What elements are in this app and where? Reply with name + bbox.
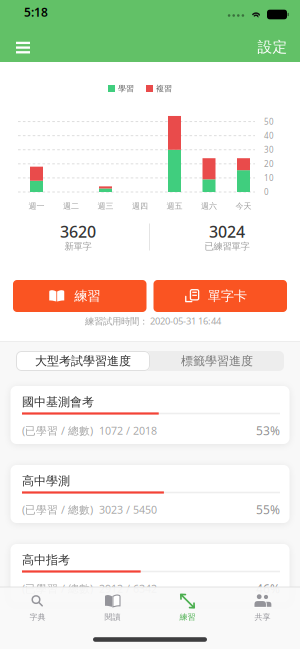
button[interactable]: 高中學測 xyxy=(10,465,289,523)
staticText: 週四 xyxy=(132,201,148,211)
staticText: 3024 xyxy=(209,221,245,242)
staticText: 閱讀 xyxy=(104,612,120,622)
staticText: 30 xyxy=(264,144,274,155)
staticText: 新單字 xyxy=(64,241,91,252)
staticText: 練習 xyxy=(74,288,100,304)
button[interactable]: 字典 xyxy=(2,588,72,628)
staticText: 20 xyxy=(264,158,274,169)
staticText: 單字卡 xyxy=(208,288,247,304)
button[interactable]: 高中指考 xyxy=(10,544,289,602)
button[interactable]: 設定 xyxy=(257,38,287,56)
button[interactable]: 共享 xyxy=(227,588,297,628)
staticText: 高中學測 xyxy=(22,474,70,488)
button[interactable]: 國中基測會考 xyxy=(10,386,289,444)
staticText: 字典 xyxy=(29,612,45,622)
staticText: 10 xyxy=(264,173,274,183)
staticText: 練習試用時間： 2020-05-31 16:44 xyxy=(85,315,221,327)
staticText: 46% xyxy=(256,580,280,596)
staticText: 週六 xyxy=(201,201,217,211)
staticText: 週三 xyxy=(97,201,113,211)
staticText: 設定 xyxy=(257,38,287,56)
staticText: 55% xyxy=(256,501,280,517)
staticText: 0 xyxy=(264,187,269,197)
staticText: (已學習 / 總數) 3023 / 5450 xyxy=(22,502,157,517)
staticText: 國中基測會考 xyxy=(22,395,94,409)
button[interactable]: 練習 xyxy=(13,280,146,312)
staticText: 今天 xyxy=(235,201,251,211)
staticText: 週五 xyxy=(166,201,182,211)
staticText: 標籤學習進度 xyxy=(181,354,253,368)
staticText: 週二 xyxy=(63,201,79,211)
button[interactable]: 單字卡 xyxy=(153,280,287,312)
staticText: 共享 xyxy=(254,612,270,622)
staticText: 5:18 xyxy=(24,4,48,20)
staticText: 高中指考 xyxy=(22,553,70,567)
staticText: (已學習 / 總數) 2912 / 6342 xyxy=(22,581,157,596)
button[interactable]: 大型考試學習進度 xyxy=(16,351,150,371)
button[interactable]: 閱讀 xyxy=(77,588,147,628)
staticText: 3620 xyxy=(60,221,96,242)
button[interactable]: 標籤學習進度 xyxy=(16,351,284,371)
staticText: (已學習 / 總數) 1072 / 2018 xyxy=(22,423,157,438)
staticText: 複習 xyxy=(156,84,172,93)
staticText: 練習 xyxy=(179,612,195,622)
staticText: 已練習單字 xyxy=(204,241,249,252)
staticText: 40 xyxy=(264,130,274,141)
staticText: 50 xyxy=(264,116,274,127)
staticText: 大型考試學習進度 xyxy=(35,354,131,368)
staticText: 53% xyxy=(256,422,280,438)
staticText: 學習 xyxy=(118,84,134,93)
staticText: 週一 xyxy=(28,201,44,211)
button[interactable] xyxy=(16,42,30,53)
button[interactable]: 練習 xyxy=(152,588,222,628)
